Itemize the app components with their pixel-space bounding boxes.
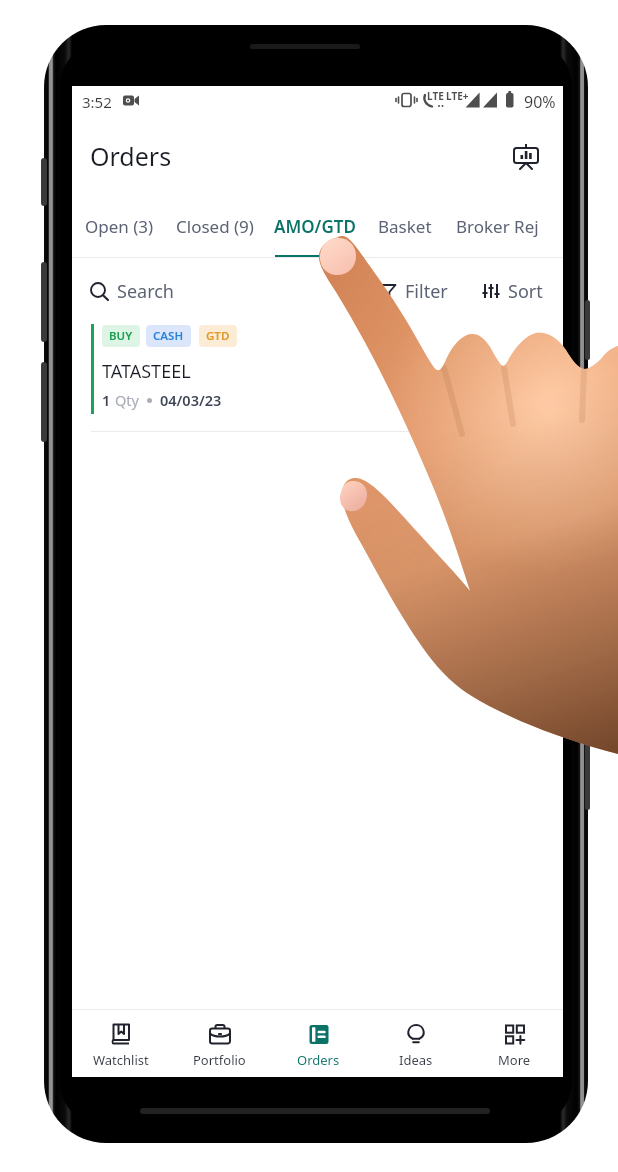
staticText: AMO/GTD: [274, 215, 356, 238]
button[interactable]: Search: [90, 276, 174, 306]
staticText: Orders: [297, 1051, 340, 1069]
staticText: Sort: [508, 279, 543, 304]
button[interactable]: Charts: [504, 135, 548, 179]
staticText: Qty: [115, 390, 139, 410]
button[interactable]: Filter: [379, 276, 448, 306]
staticText: Closed (9): [176, 215, 254, 238]
staticText: 90%: [524, 91, 556, 113]
button[interactable]: BUY: [72, 318, 563, 432]
staticText: TATASTEEL: [102, 359, 191, 384]
button[interactable]: More: [465, 1010, 563, 1077]
staticText: Filter: [405, 279, 448, 304]
staticText: 3:52: [82, 92, 112, 112]
staticText: GTD: [206, 328, 230, 344]
button[interactable]: Broker Rej: [445, 206, 549, 260]
staticText: Basket: [378, 215, 432, 238]
button[interactable]: Orders: [269, 1010, 367, 1077]
button[interactable]: AMO/GTD: [266, 206, 363, 260]
button[interactable]: Ideas: [367, 1010, 465, 1077]
button[interactable]: Watchlist: [72, 1010, 170, 1077]
staticText: Portfolio: [193, 1051, 246, 1069]
staticText: Ideas: [399, 1051, 433, 1069]
staticText: Search: [117, 279, 174, 304]
staticText: Open (3): [85, 215, 154, 238]
button[interactable]: Closed (9): [166, 206, 264, 260]
staticText: 04/03/23: [160, 390, 222, 410]
button[interactable]: Sort: [482, 276, 543, 306]
staticText: Watchlist: [93, 1051, 149, 1069]
button[interactable]: Basket: [369, 206, 441, 260]
button[interactable]: Portfolio: [170, 1010, 268, 1077]
staticText: BUY: [109, 328, 133, 344]
staticText: LTE: [427, 89, 444, 103]
staticText: CASH: [153, 328, 184, 344]
staticText: Broker Rej: [456, 215, 539, 238]
staticText: More: [498, 1051, 531, 1069]
staticText: Orders: [90, 139, 172, 173]
staticText: 1: [102, 390, 115, 410]
staticText: LTE+: [446, 89, 469, 103]
button[interactable]: Open (3): [75, 206, 163, 260]
